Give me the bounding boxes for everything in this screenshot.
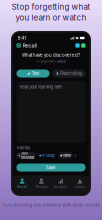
button[interactable]: Work: [58, 152, 73, 159]
button[interactable]: Just finished: [16, 152, 36, 159]
staticText: Turn learning into memory with daily rec…: [1, 202, 100, 208]
button[interactable]: Insights: [51, 173, 70, 197]
staticText: Recall: [22, 42, 36, 49]
staticText: Review: [36, 185, 47, 189]
staticText: What have you discovered?: [22, 52, 80, 58]
staticText: Text: [32, 71, 39, 76]
button[interactable]: Library: [70, 173, 89, 197]
staticText: Recall: [17, 185, 27, 189]
button[interactable]: Text: [16, 69, 49, 77]
button[interactable]: In Study: [37, 152, 57, 159]
staticText: Work: [63, 153, 71, 158]
button[interactable]: Statistics: [75, 43, 80, 48]
staticText: Insights: [54, 185, 67, 189]
staticText: Recording: [60, 71, 82, 76]
staticText: Save: [46, 165, 56, 170]
staticText: 9:41: [17, 35, 26, 41]
button[interactable]: Recording: [52, 69, 85, 77]
button[interactable]: Profile: [80, 43, 85, 48]
staticText: Just finished: [21, 151, 34, 160]
staticText: voice: [56, 59, 65, 63]
staticText: In Study: [42, 153, 55, 158]
button[interactable]: Save: [16, 163, 85, 171]
staticText: in your own: [36, 59, 55, 63]
button[interactable]: Recall: [12, 173, 32, 197]
button[interactable]: Review: [32, 173, 51, 197]
staticText: you learn or watch: [15, 13, 86, 22]
staticText: Library: [74, 185, 85, 189]
staticText: Add tag: [16, 146, 29, 150]
staticText: Stop forgetting what: [11, 2, 90, 12]
staticText: recall your learning here: [19, 84, 61, 89]
